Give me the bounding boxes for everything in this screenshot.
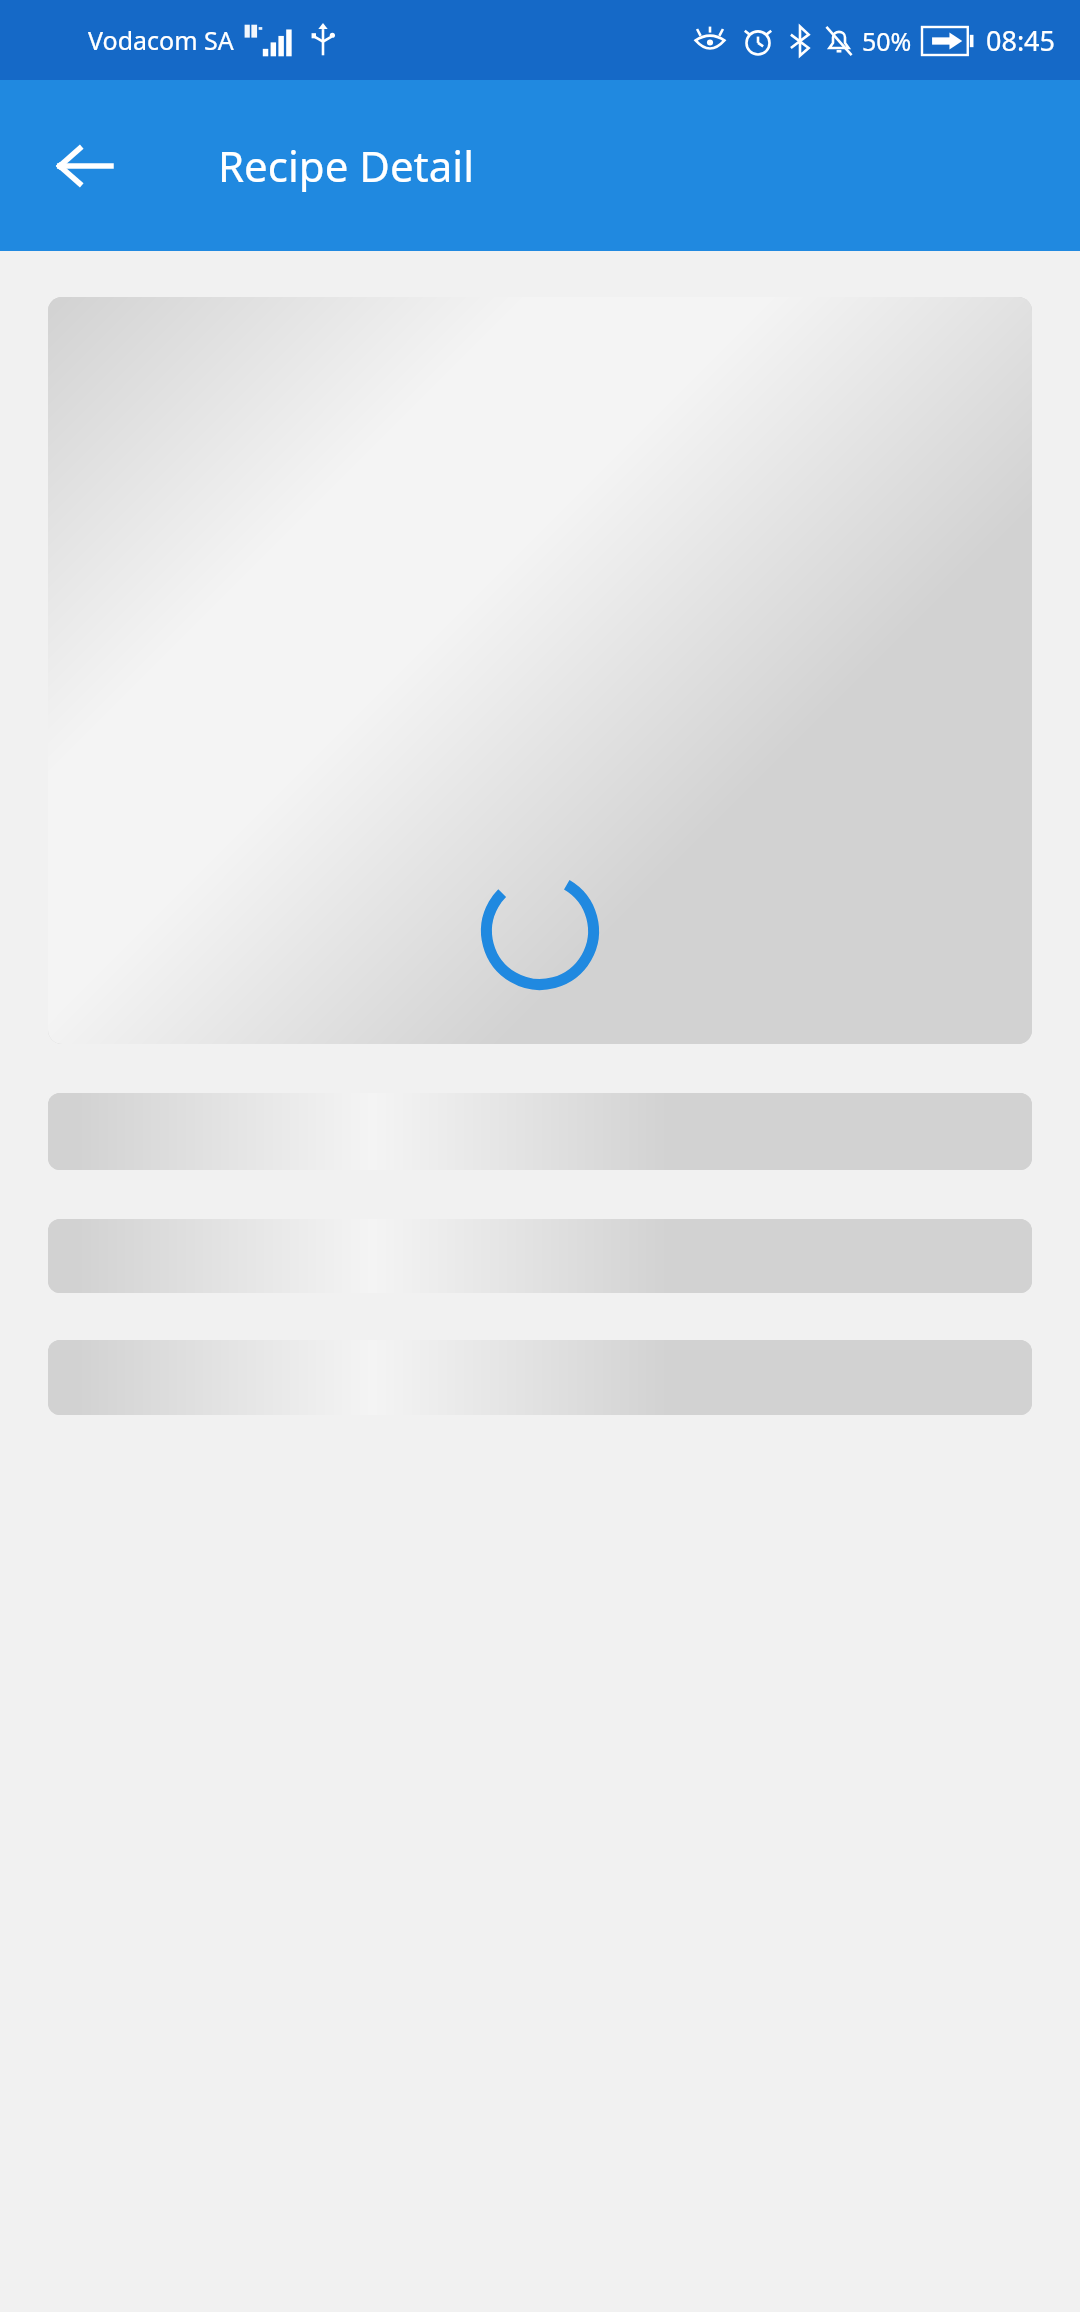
staticText: Recipe Detail: [218, 137, 474, 194]
button[interactable]: [48, 297, 1032, 1044]
button[interactable]: [48, 1093, 1032, 1170]
button[interactable]: [48, 1340, 1032, 1415]
button[interactable]: [48, 1219, 1032, 1293]
staticText: 50%: [862, 24, 912, 58]
staticText: 08:45: [986, 22, 1056, 59]
staticText: Vodacom SA: [88, 23, 234, 57]
button[interactable]: Back: [36, 118, 132, 214]
